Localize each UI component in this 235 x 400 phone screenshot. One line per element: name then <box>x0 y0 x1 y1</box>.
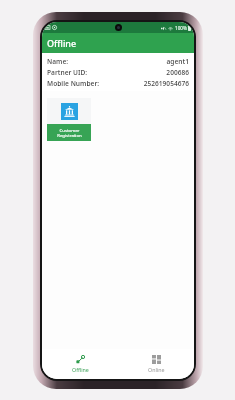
staticText: agent1 <box>166 57 189 66</box>
button[interactable]: Customer Registration <box>47 98 91 141</box>
staticText: Offline <box>72 366 89 373</box>
staticText: Name: <box>47 57 69 66</box>
staticText: 100% <box>175 25 187 31</box>
staticText: Offline <box>47 37 77 49</box>
other: Customer Registration <box>61 103 78 120</box>
button[interactable]: Online <box>118 349 194 379</box>
staticText: 252619054676 <box>143 79 189 88</box>
staticText: Mobile Number: <box>47 79 100 88</box>
staticText: Partner UID: <box>47 68 88 77</box>
staticText: Customer Registration <box>57 127 82 138</box>
staticText: Online <box>148 366 165 373</box>
button[interactable]: Offline <box>42 349 118 379</box>
staticText: 200686 <box>166 68 189 77</box>
